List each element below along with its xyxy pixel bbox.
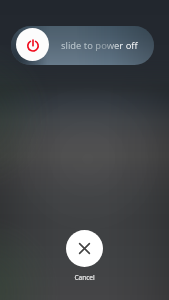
staticText: slide to power off (61, 39, 138, 52)
button[interactable]: Cancel (66, 230, 103, 267)
button[interactable]: Slide to power off (16, 28, 49, 61)
staticText: Cancel (74, 273, 95, 282)
button[interactable]: slide to power off (11, 26, 154, 65)
